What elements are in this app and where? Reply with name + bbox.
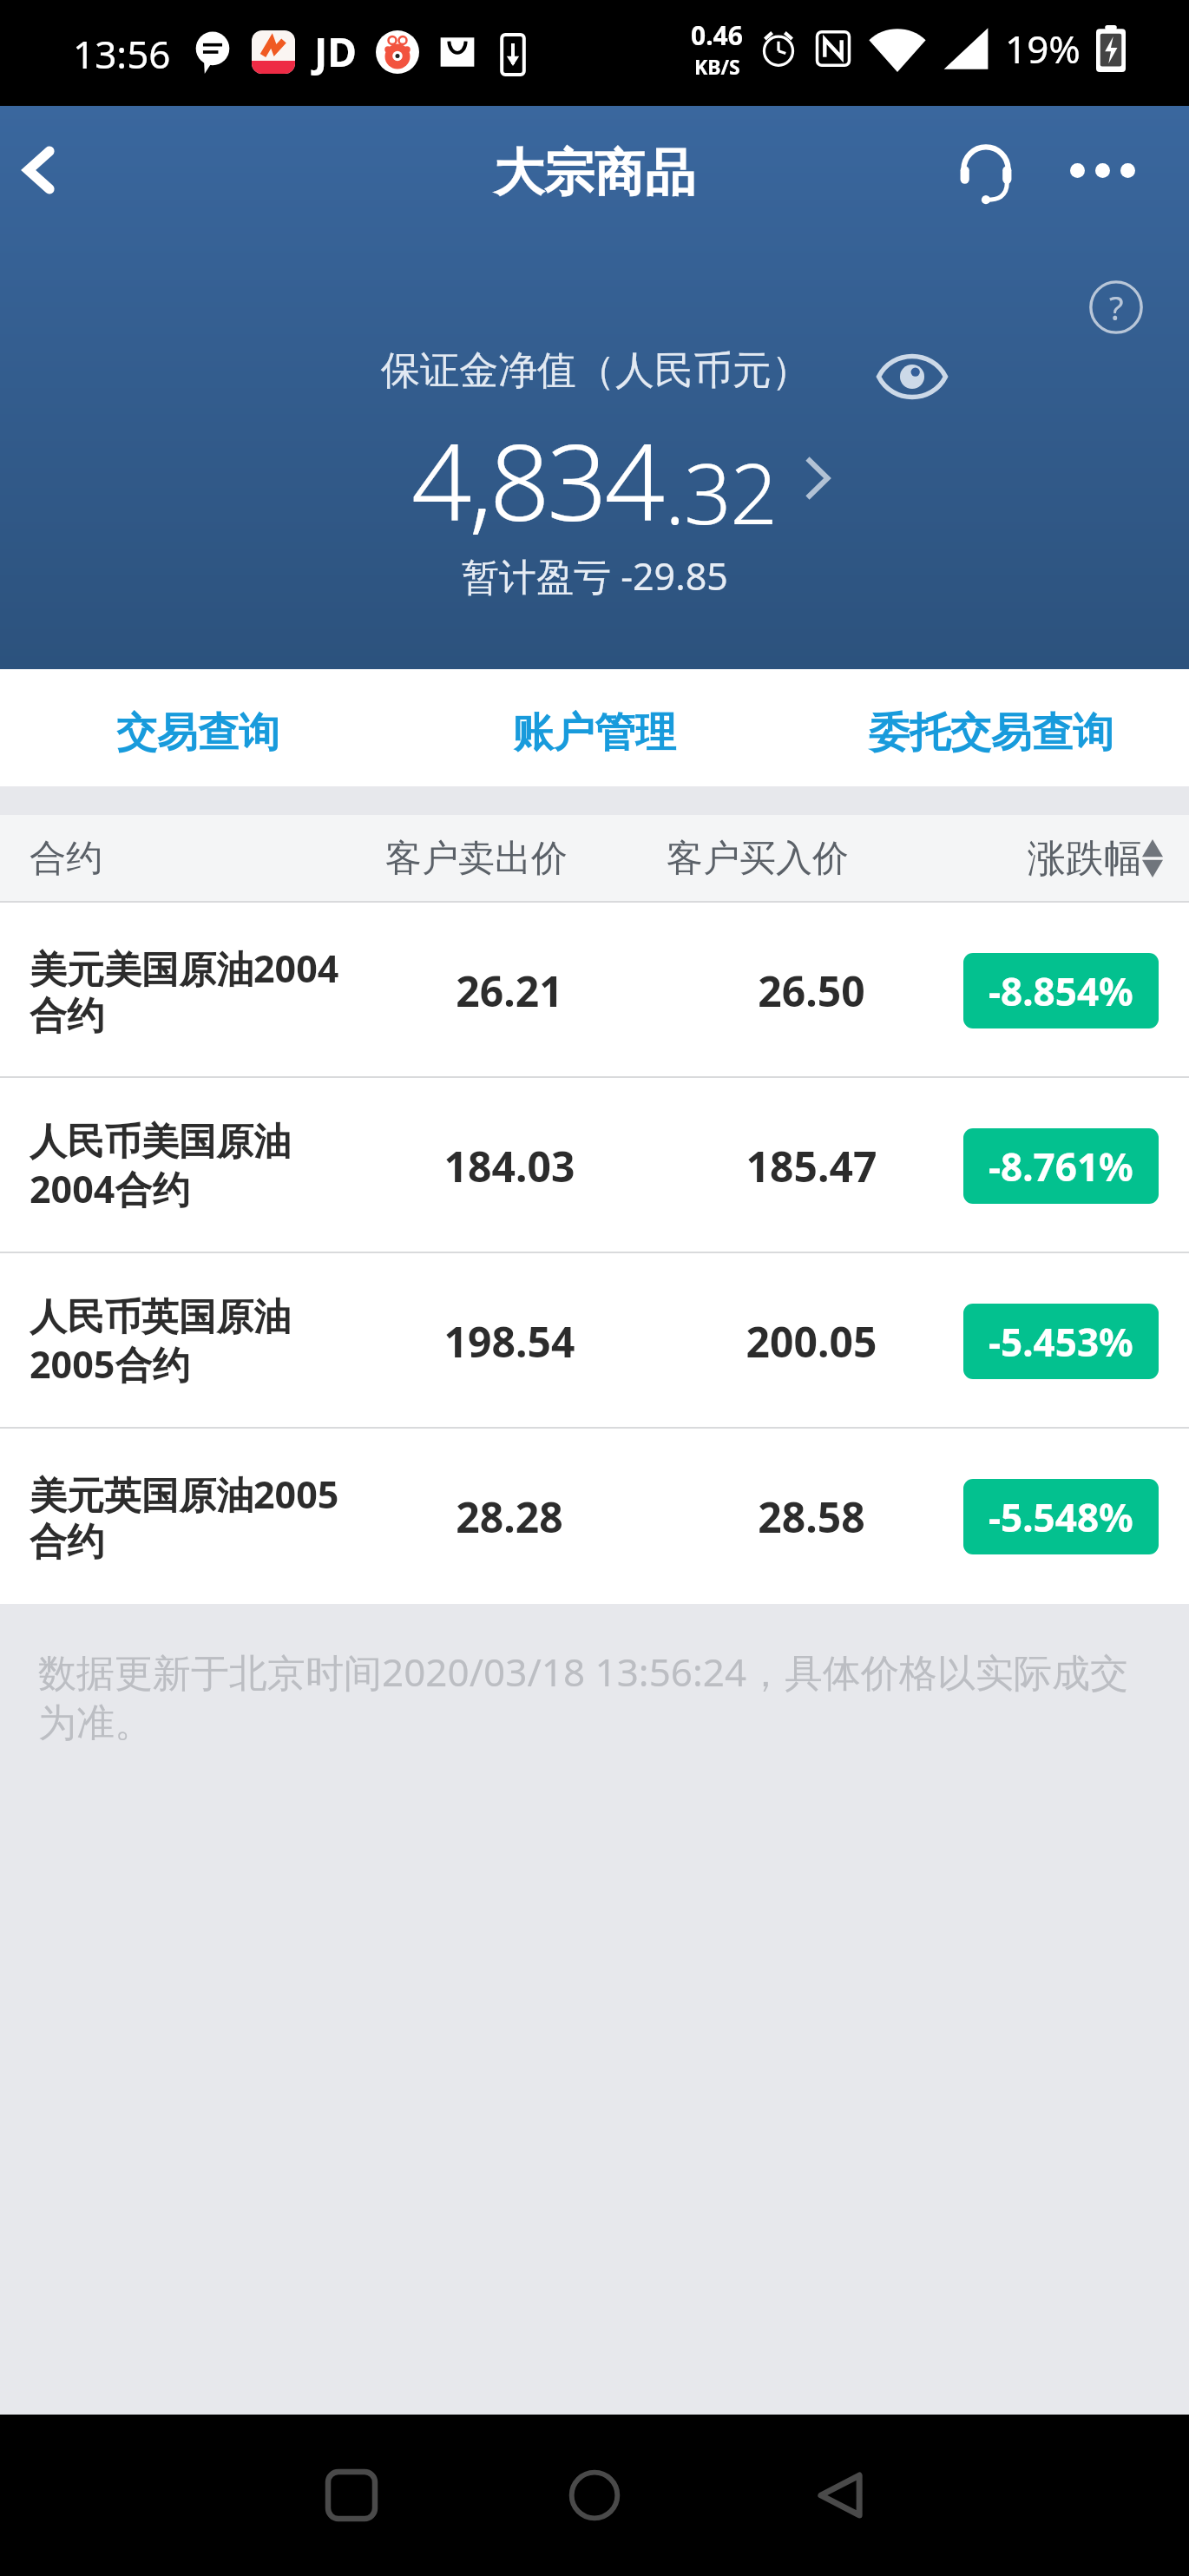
button[interactable]: More options (1054, 122, 1150, 218)
staticText: 0.46 (691, 17, 743, 53)
staticText: 美元英国原油2005 合约 (30, 1469, 339, 1565)
button[interactable]: Back (0, 118, 104, 222)
button[interactable]: 人民币美国原油 2004合约 (0, 1078, 1189, 1253)
button[interactable]: 人民币英国原油 2005合约 (0, 1253, 1189, 1429)
staticText: 大宗商品 (494, 141, 695, 205)
staticText: 委托交易查询 (869, 707, 1113, 759)
staticText: 26.50 (694, 963, 929, 1019)
staticText: 涨跌幅 (1028, 835, 1142, 883)
staticText: 4,834 (411, 408, 662, 552)
staticText: 人民币美国原油 2004合约 (30, 1119, 291, 1213)
button[interactable]: Back (794, 2452, 881, 2539)
staticText: 账户管理 (513, 707, 676, 759)
staticText: .32 (665, 435, 777, 549)
staticText: 保证金净值（人民币元） (381, 346, 811, 396)
staticText: 客户卖出价 (385, 836, 568, 882)
button[interactable]: 涨跌幅 (1028, 835, 1163, 883)
staticText: KB/S (694, 53, 740, 80)
staticText: 美元美国原油2004 合约 (30, 943, 339, 1039)
button[interactable]: Toggle balance visibility (856, 333, 969, 420)
button[interactable]: 美元英国原油2005 合约 (0, 1429, 1189, 1604)
staticText: 13:56 (73, 28, 171, 80)
staticText: -5.548% (989, 1491, 1133, 1543)
button[interactable]: 委托交易查询 (792, 669, 1189, 786)
staticText: 合约 (30, 836, 102, 882)
staticText: -8.761% (989, 1140, 1133, 1193)
staticText: JD (314, 24, 357, 79)
staticText: 数据更新于北京时间2020/03/18 13:56:24，具体价格以实际成交 为… (38, 1646, 1140, 1747)
staticText: 185.47 (694, 1138, 929, 1194)
staticText: 人民币英国原油 2005合约 (30, 1294, 291, 1389)
button[interactable]: 交易查询 (0, 669, 396, 786)
staticText: 198.54 (392, 1313, 627, 1370)
staticText: 184.03 (392, 1138, 627, 1194)
button[interactable]: Margin net value detail (395, 434, 846, 529)
staticText: 交易查询 (116, 707, 279, 759)
staticText: 28.58 (694, 1488, 929, 1545)
staticText: 28.28 (392, 1488, 627, 1545)
button[interactable]: 美元美国原油2004 合约 (0, 903, 1189, 1078)
staticText: ? (1109, 285, 1124, 330)
staticText: 200.05 (694, 1313, 929, 1370)
button[interactable]: Help (1083, 274, 1149, 340)
button[interactable]: Recents (305, 2452, 392, 2539)
staticText: 客户买入价 (667, 836, 849, 882)
button[interactable]: 账户管理 (396, 669, 792, 786)
staticText: -5.453% (989, 1316, 1133, 1368)
button[interactable]: Customer service (938, 122, 1034, 217)
staticText: -8.854% (989, 965, 1133, 1017)
button[interactable]: Home (551, 2452, 638, 2539)
staticText: 26.21 (392, 963, 627, 1019)
staticText: 19% (1005, 23, 1081, 75)
staticText: 暂计盈亏 -29.85 (462, 550, 728, 601)
